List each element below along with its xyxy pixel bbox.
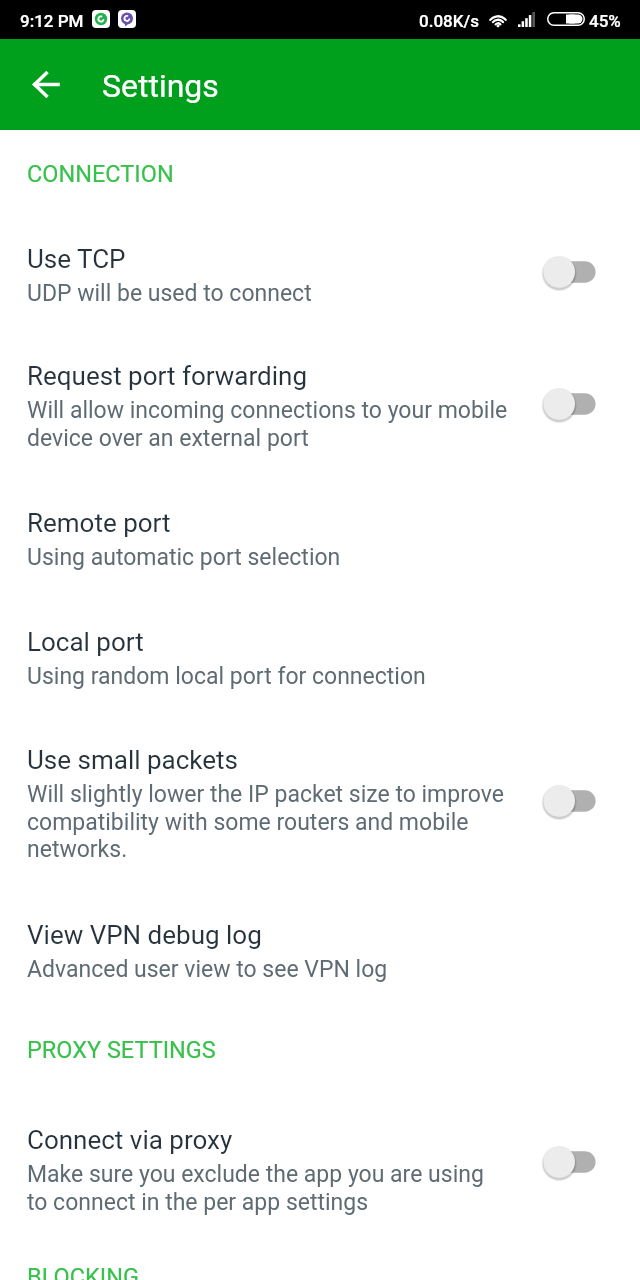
button[interactable]: Use small packets [0,716,640,891]
staticText: 0.08K/s [419,11,479,31]
staticText: Remote port [27,508,171,538]
staticText: BLOCKING [27,1263,139,1280]
button[interactable]: Back [0,39,91,130]
staticText: networks. [27,836,128,863]
staticText: device over an external port [27,425,309,452]
staticText: Connect via proxy [27,1125,233,1155]
button[interactable]: Request port forwarding [0,332,640,479]
staticText: Advanced user view to see VPN log [27,956,388,983]
staticText: Request port forwarding [27,361,307,391]
staticText: Using random local port for connection [27,663,426,690]
button[interactable]: Toggle [528,1134,612,1190]
staticText: Will allow incoming connections to your … [27,397,508,424]
button[interactable]: View VPN debug log [0,891,640,1010]
staticText: compatibility with some routers and mobi… [27,809,469,836]
staticText: Use TCP [27,244,126,274]
staticText: 9:12 PM [20,11,84,31]
staticText: Local port [27,627,144,657]
button[interactable]: Local port [0,598,640,716]
staticText: 45% [589,11,621,31]
staticText: Will slightly lower the IP packet size t… [27,781,504,808]
staticText: to connect in the per app settings [27,1189,369,1216]
button[interactable]: Toggle [528,244,612,300]
staticText: Make sure you exclude the app you are us… [27,1161,484,1188]
button[interactable]: Connect via proxy [0,1096,640,1243]
button[interactable]: Toggle [528,376,612,432]
staticText: UDP will be used to connect [27,280,312,307]
staticText: View VPN debug log [27,920,262,950]
button[interactable]: Toggle [528,773,612,829]
staticText: CONNECTION [27,160,174,188]
button[interactable]: Use TCP [0,215,640,332]
staticText: Use small packets [27,745,238,775]
button[interactable]: Remote port [0,479,640,598]
staticText: Using automatic port selection [27,544,341,571]
staticText: Settings [102,67,219,105]
staticText: PROXY SETTINGS [27,1036,216,1064]
